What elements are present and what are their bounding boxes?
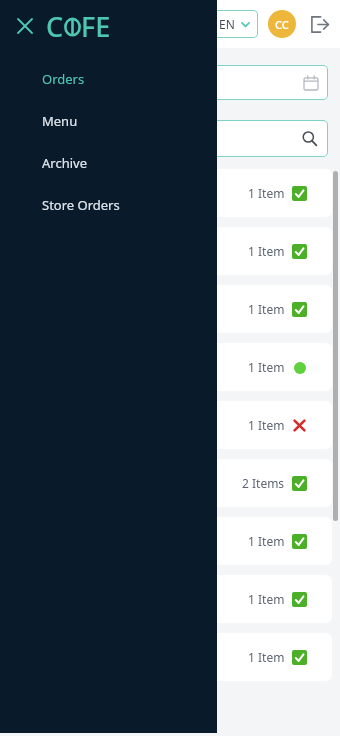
button[interactable]: Menu [0,112,217,129]
staticText: CC [275,17,289,32]
staticText: 1 Item [248,185,285,201]
staticText: Orders [42,70,85,87]
staticText: 1 Item [248,591,285,607]
staticText: Archive [42,154,87,171]
staticText: 1 Item [248,301,285,317]
staticText: EN [219,16,235,32]
staticText: 2 Items [242,475,285,491]
button[interactable]: 1 Item [8,633,332,681]
staticText: FE [81,8,111,45]
staticText: 1 Item [248,533,285,549]
button[interactable]: Log out [306,11,332,37]
button[interactable]: 1 Item [8,169,332,217]
button[interactable]: Search Order [12,120,328,157]
button[interactable]: Close menu [12,13,38,39]
button[interactable]: 1 Item [8,343,332,391]
button[interactable]: 1 Item [8,575,332,623]
button[interactable]: 2 Items [8,459,332,507]
button[interactable] [12,65,328,100]
button[interactable]: Archive [0,154,217,171]
button[interactable]: 1 Item [8,401,332,449]
button[interactable]: 1 Item [8,227,332,275]
staticText: 1 Item [248,243,285,259]
button[interactable]: EN [211,10,258,38]
button[interactable]: Orders [0,70,217,87]
staticText: 1 Item [248,649,285,665]
staticText: 1 Item [248,417,285,433]
staticText: 1 Item [248,359,285,375]
staticText: Menu [42,112,78,129]
button[interactable]: 1 Item [8,517,332,565]
button[interactable]: CC [268,10,296,38]
staticText: C [46,8,64,45]
staticText: Store Orders [42,196,120,213]
button[interactable]: 1 Item [8,285,332,333]
button[interactable]: Store Orders [0,196,217,213]
